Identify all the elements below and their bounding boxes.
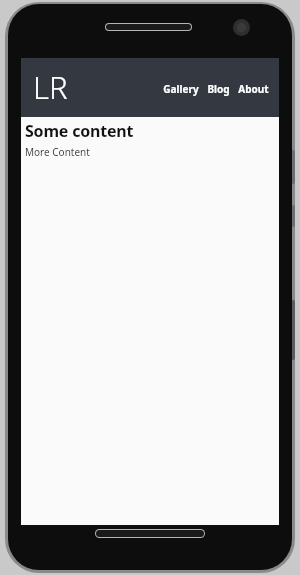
- button[interactable]: LR: [29, 64, 72, 110]
- staticText: Gallery: [163, 82, 199, 96]
- staticText: Blog: [207, 82, 230, 96]
- button[interactable]: About: [234, 78, 273, 100]
- staticText: About: [238, 82, 269, 96]
- staticText: LR: [33, 66, 68, 108]
- button[interactable]: Gallery: [159, 78, 203, 100]
- staticText: More Content: [25, 145, 90, 159]
- button[interactable]: Blog: [203, 78, 234, 100]
- staticText: Some content: [25, 120, 134, 142]
